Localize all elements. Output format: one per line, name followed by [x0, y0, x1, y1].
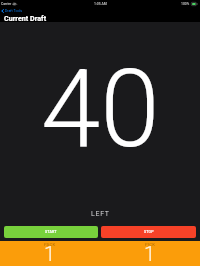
staticText: 1:05 AM [94, 2, 107, 6]
button[interactable]: STOP [101, 226, 196, 238]
button[interactable]: PICK [100, 241, 200, 266]
staticText: PICK [145, 242, 156, 247]
staticText: STOP [144, 230, 154, 234]
staticText: 40 [41, 47, 160, 172]
button[interactable]: PACK [0, 241, 100, 266]
staticText: LEFT [91, 210, 110, 218]
staticText: Draft Tools [5, 9, 23, 13]
staticText: 100% [181, 2, 190, 6]
button[interactable]: START [4, 226, 98, 238]
staticText: 1 [144, 242, 156, 265]
staticText: PACK [44, 242, 56, 247]
staticText: Carrier [1, 2, 12, 6]
staticText: 1 [44, 242, 56, 265]
staticText: Current Draft [4, 14, 47, 22]
button[interactable]: Back to Draft Tools [0, 8, 25, 14]
staticText: START [45, 230, 57, 234]
